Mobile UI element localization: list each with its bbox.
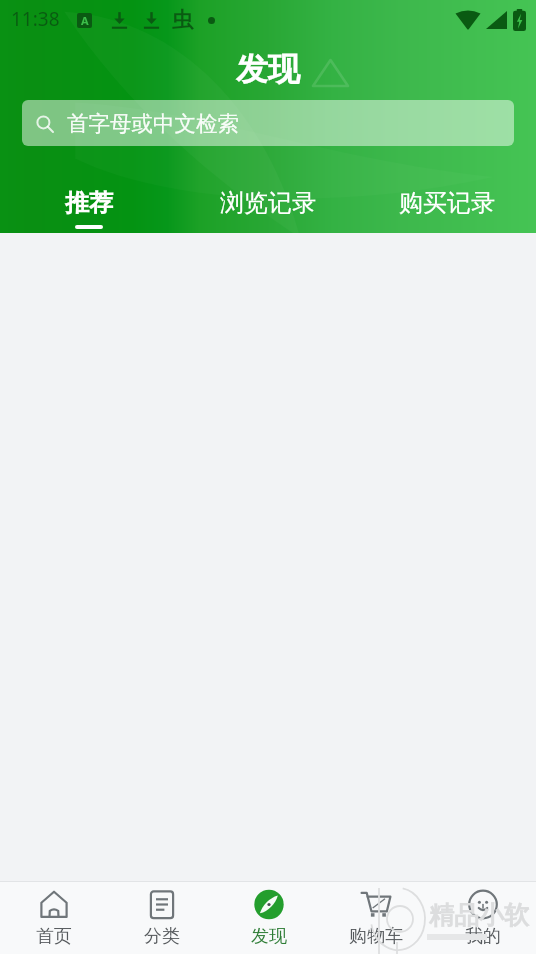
staticText: 购物车 xyxy=(349,925,403,948)
staticText: 精品小软 xyxy=(429,900,529,931)
button[interactable]: 购买记录 xyxy=(357,186,536,233)
button[interactable]: 推荐 xyxy=(0,186,178,233)
staticText: 浏览记录 xyxy=(220,188,316,218)
button[interactable]: 首页 xyxy=(0,882,108,954)
button[interactable]: 分类 xyxy=(108,882,215,954)
staticText: 分类 xyxy=(144,925,180,948)
staticText: 首页 xyxy=(36,925,72,948)
button[interactable]: 发现 xyxy=(215,882,322,954)
button[interactable]: 首字母或中文检索 xyxy=(22,100,514,146)
staticText: 虫 xyxy=(172,7,193,33)
staticText: A xyxy=(81,13,89,28)
staticText: 我的 xyxy=(465,925,501,948)
button[interactable]: 购物车 xyxy=(322,882,429,954)
staticText: 推荐 xyxy=(65,188,113,218)
button[interactable]: 浏览记录 xyxy=(178,186,357,233)
button[interactable]: 我的 xyxy=(429,882,536,954)
staticText: 购买记录 xyxy=(399,188,495,218)
staticText: 发现 xyxy=(236,49,300,89)
staticText: 发现 xyxy=(251,925,287,948)
staticText: 首字母或中文检索 xyxy=(67,110,239,137)
staticText: 11:38 xyxy=(11,6,60,32)
